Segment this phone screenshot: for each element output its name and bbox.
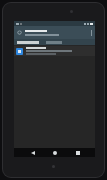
button[interactable]: Back [28,148,37,157]
button[interactable] [14,46,95,56]
button[interactable]: Recent apps [73,148,82,157]
button[interactable] [14,26,95,45]
button[interactable]: Home [50,148,59,157]
